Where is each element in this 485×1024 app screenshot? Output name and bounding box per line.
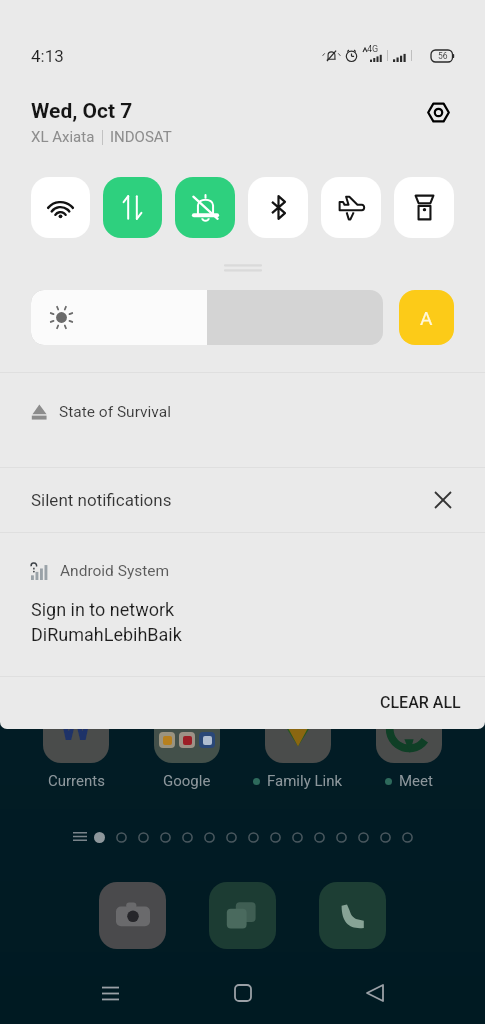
staticText: Family Link [267,772,343,790]
button[interactable]: State of Survival [0,372,485,466]
staticText: DiRumahLebihBaik [31,624,182,645]
button[interactable]: W [21,697,131,790]
staticText: Android System [60,562,170,580]
staticText: State of Survival [59,403,171,421]
button[interactable]: Auto brightness [399,290,454,345]
button[interactable]: Home [221,971,265,1015]
button[interactable]: Family Link [242,697,353,790]
button[interactable]: Wi-Fi [31,177,90,238]
button[interactable]: Recent apps [209,882,276,949]
button[interactable]: Mobile data [103,177,162,238]
staticText: XL Axiata [31,128,95,146]
staticText: INDOSAT [110,128,172,146]
staticText: Meet [399,772,433,790]
staticText: Sign in to network [31,599,175,620]
button[interactable]: Back [353,971,397,1015]
button[interactable]: Settings [419,93,457,131]
button[interactable]: Brightness [31,290,383,345]
staticText: 4:13 [31,46,64,66]
button[interactable]: Flashlight [394,177,454,238]
button[interactable]: CLEAR ALL [368,683,473,722]
button[interactable]: Do not disturb [175,177,235,238]
staticText: A [420,307,433,329]
button[interactable]: Android System [0,532,485,675]
button[interactable]: Camera [99,882,166,949]
button[interactable]: Airplane mode [321,177,381,238]
button[interactable]: Google [131,697,242,790]
button[interactable]: Bluetooth [248,177,308,238]
staticText: W [59,705,93,750]
button[interactable]: Phone [319,882,386,949]
staticText: 56 [438,51,448,61]
staticText: CLEAR ALL [380,693,461,712]
button[interactable]: Dismiss silent notifications [426,483,460,517]
staticText: Google [163,772,211,790]
staticText: Silent notifications [31,490,172,510]
button[interactable]: Meet [353,697,464,790]
staticText: 4G [367,44,379,55]
button[interactable]: Recents [88,971,132,1015]
staticText: Currents [48,772,105,790]
staticText: Wed, Oct 7 [31,99,133,124]
